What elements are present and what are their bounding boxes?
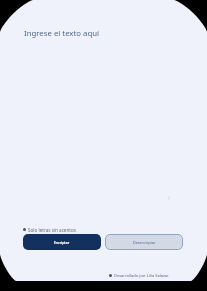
staticText: Encriptar xyxy=(54,240,70,245)
button[interactable]: Desencriptar xyxy=(105,234,183,250)
staticText: Desarrollado por Lilia Salazar xyxy=(114,273,169,278)
staticText: Desencriptar xyxy=(133,240,156,245)
staticText: Ingrese el texto aquí xyxy=(24,28,100,39)
staticText: Solo letras sin acentos xyxy=(28,227,76,233)
button[interactable]: Encriptar xyxy=(23,234,101,250)
